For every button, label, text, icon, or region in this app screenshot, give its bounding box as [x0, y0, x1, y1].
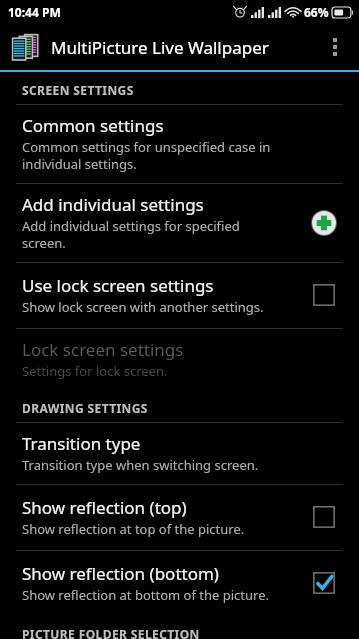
button[interactable]: Show reflection (bottom): [0, 551, 359, 616]
staticText: Settings for lock screen.: [22, 362, 168, 380]
button[interactable]: More options: [315, 27, 355, 67]
button[interactable]: Common settings: [0, 105, 359, 183]
staticText: Transition type when switching screen.: [22, 456, 259, 474]
staticText: Show reflection (bottom): [22, 562, 219, 585]
staticText: Transition type: [22, 432, 141, 455]
staticText: Show lock screen with another settings.: [22, 298, 264, 316]
button[interactable]: Transition type: [0, 423, 359, 484]
staticText: Show reflection (top): [22, 496, 187, 519]
staticText: Show reflection at top of the picture.: [22, 520, 245, 538]
staticText: Add individual settings: [22, 193, 204, 216]
button[interactable]: Lock screen settings: [0, 329, 359, 390]
staticText: Lock screen settings: [22, 338, 184, 361]
button[interactable]: Use lock screen settings: [301, 272, 347, 318]
staticText: PICTURE FOLDER SELECTION: [22, 626, 200, 639]
staticText: Use lock screen settings: [22, 274, 214, 297]
staticText: 10:44 PM: [8, 4, 61, 20]
button[interactable]: Show reflection (bottom): [301, 560, 347, 606]
button[interactable]: Add individual settings: [301, 200, 347, 246]
staticText: DRAWING SETTINGS: [22, 400, 148, 416]
button[interactable]: Use lock screen settings: [0, 263, 359, 328]
staticText: SCREEN SETTINGS: [22, 82, 134, 98]
button[interactable]: Show reflection (top): [0, 485, 359, 550]
staticText: Show reflection at bottom of the picture…: [22, 586, 269, 604]
staticText: Common settings for unspecified case in …: [22, 138, 271, 173]
button[interactable]: Show reflection (top): [301, 494, 347, 540]
button[interactable]: Add individual settings: [0, 184, 359, 262]
staticText: Common settings: [22, 114, 164, 137]
staticText: MultiPicture Live Wallpaper: [51, 36, 315, 59]
staticText: Add individual settings for specified sc…: [22, 217, 240, 252]
staticText: 66%: [304, 4, 329, 20]
